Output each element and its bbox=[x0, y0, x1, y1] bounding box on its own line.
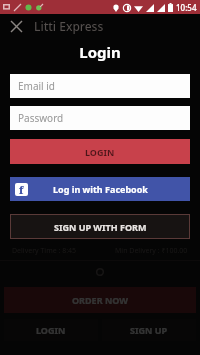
staticText: Password bbox=[18, 111, 64, 125]
button[interactable]: LOGIN bbox=[4, 319, 98, 341]
staticText: Email id bbox=[18, 79, 56, 93]
button[interactable]: SIGN UP WITH FORM bbox=[10, 214, 190, 239]
staticText: Delivery Time : 8:45 bbox=[12, 246, 77, 256]
button[interactable]: LOGIN bbox=[10, 139, 190, 164]
button[interactable]: Close bbox=[6, 16, 26, 36]
button[interactable]: SIGN UP bbox=[102, 319, 196, 341]
button[interactable]: Log in with Facebook bbox=[10, 177, 190, 201]
staticText: 10:54 bbox=[176, 2, 197, 13]
staticText: LOGIN bbox=[85, 146, 115, 158]
button[interactable]: Password bbox=[10, 106, 190, 130]
staticText: SIGN UP bbox=[130, 324, 168, 336]
staticText: ORDER NOW bbox=[72, 294, 128, 306]
staticText: Login bbox=[10, 42, 190, 62]
staticText: Litti Express bbox=[34, 18, 104, 34]
staticText: Min Delivery : ₹100.00 bbox=[115, 246, 188, 256]
staticText: LOGIN bbox=[36, 324, 66, 336]
button[interactable]: Email id bbox=[10, 74, 190, 98]
button[interactable]: ORDER NOW bbox=[4, 287, 196, 313]
staticText: f bbox=[19, 183, 24, 196]
staticText: SIGN UP WITH FORM bbox=[54, 221, 147, 233]
staticText: Log in with Facebook bbox=[53, 183, 148, 195]
